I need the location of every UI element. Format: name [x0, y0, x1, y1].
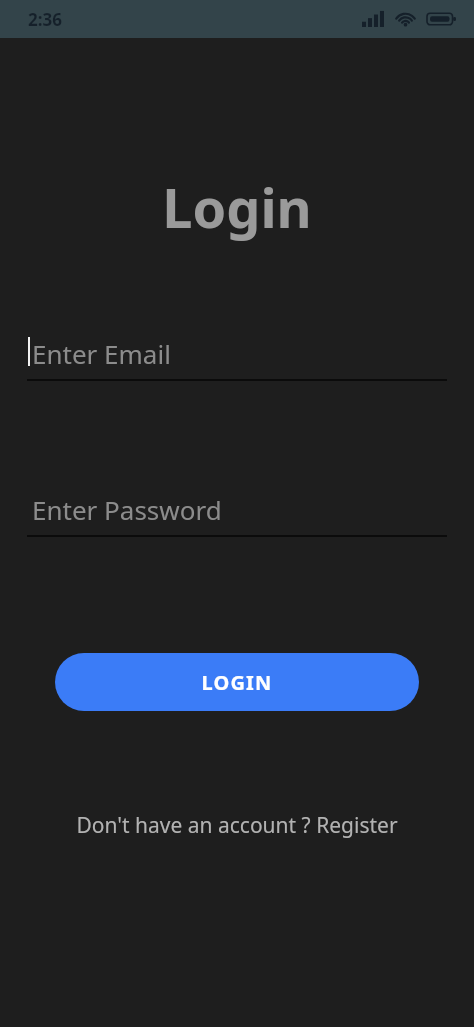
button[interactable]: LOGIN [55, 653, 419, 711]
staticText: Enter Password [32, 492, 222, 526]
staticText: LOGIN [201, 669, 273, 696]
staticText: Login [162, 170, 312, 244]
button[interactable]: Enter Email [27, 336, 447, 381]
staticText: 2:36 [28, 8, 62, 31]
button[interactable]: Enter Password [27, 492, 447, 537]
staticText: Don't have an account ? Register [76, 811, 398, 840]
staticText: Enter Email [32, 336, 171, 370]
button[interactable]: Don't have an account ? Register [68, 805, 406, 846]
